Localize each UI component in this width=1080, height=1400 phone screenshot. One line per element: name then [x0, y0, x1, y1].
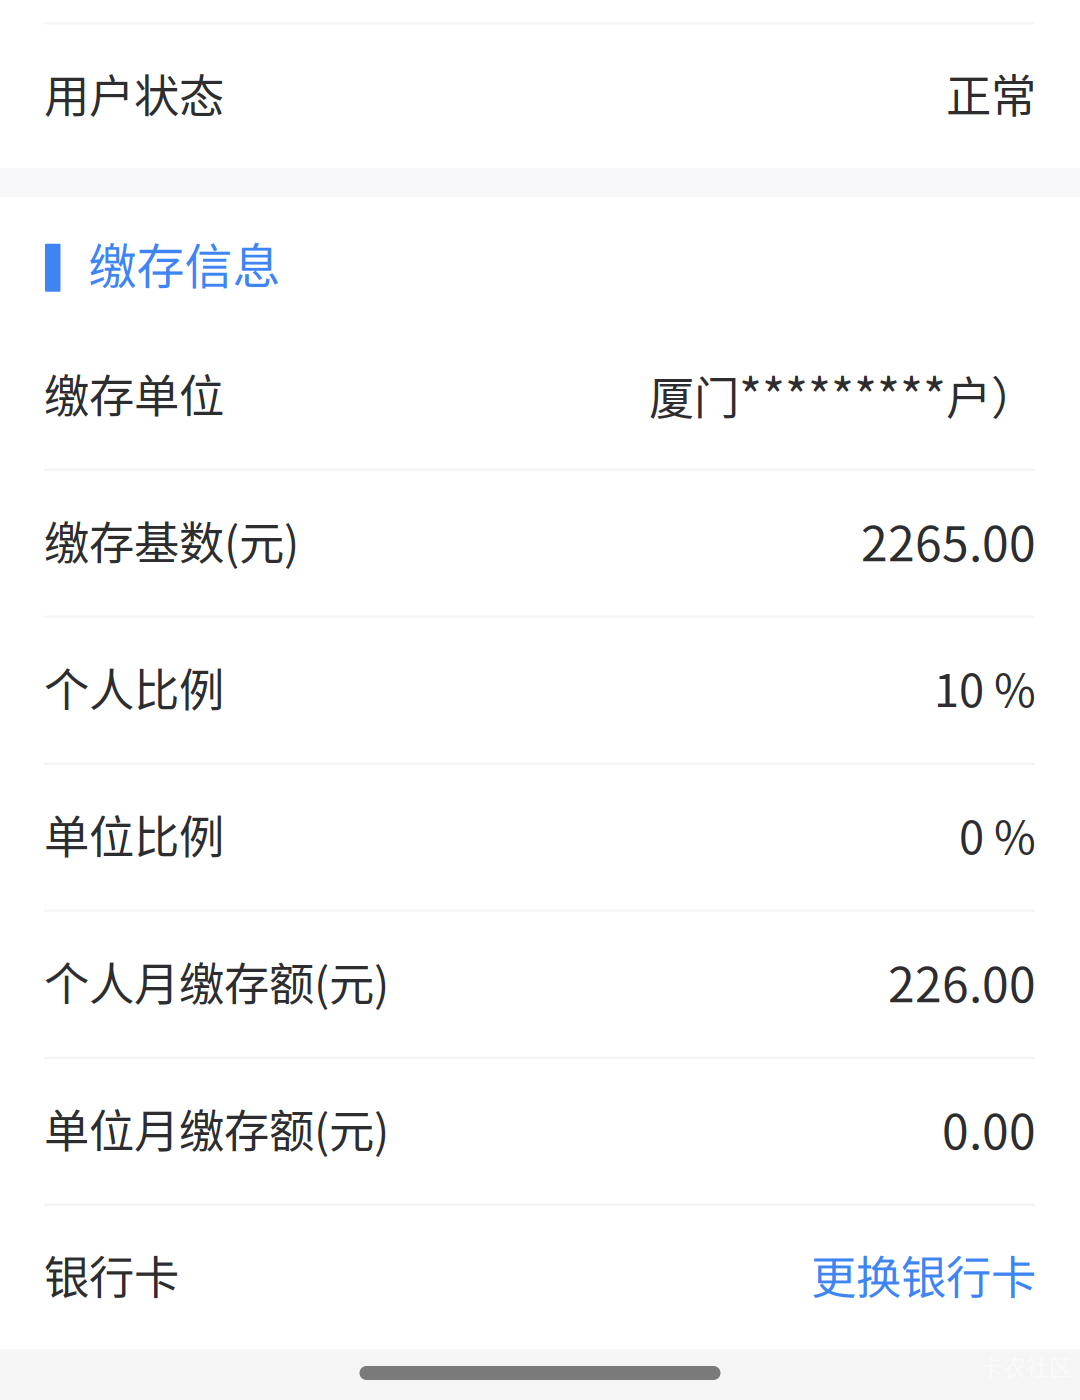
button[interactable]: 更换银行卡 — [811, 1242, 1036, 1307]
staticText: 缴存信息 — [88, 228, 280, 297]
button[interactable]: 单位月缴存额(元) — [0, 1059, 1080, 1203]
staticText: 缴存基数(元) — [44, 507, 299, 573]
staticText: 正常 — [946, 60, 1036, 126]
staticText: 0 % — [959, 801, 1036, 867]
button[interactable]: 缴存基数(元) — [0, 471, 1080, 615]
button[interactable]: 单位比例 — [0, 765, 1080, 909]
staticText: 2265.00 — [861, 505, 1036, 575]
button[interactable]: 个人比例 — [0, 618, 1080, 762]
button[interactable]: 缴存单位 — [0, 324, 1080, 468]
button[interactable]: 用户状态 — [0, 24, 1080, 168]
staticText: 0.00 — [942, 1093, 1036, 1163]
button[interactable]: 个人月缴存额(元) — [0, 912, 1080, 1056]
staticText: 缴存单位 — [44, 360, 224, 426]
staticText: 226.00 — [888, 946, 1036, 1016]
button[interactable]: 银行卡 — [0, 1206, 1080, 1349]
staticText: 更换银行卡 — [811, 1242, 1036, 1307]
staticText: 用户状态 — [44, 60, 224, 126]
staticText: 银行卡 — [44, 1242, 179, 1307]
staticText: 个人比例 — [44, 654, 224, 720]
staticText: 10 % — [934, 654, 1036, 720]
staticText: 个人月缴存额(元) — [44, 948, 389, 1014]
staticText: 厦门*********户） — [649, 358, 1036, 428]
staticText: 单位比例 — [44, 801, 224, 867]
staticText: 单位月缴存额(元) — [44, 1095, 389, 1161]
